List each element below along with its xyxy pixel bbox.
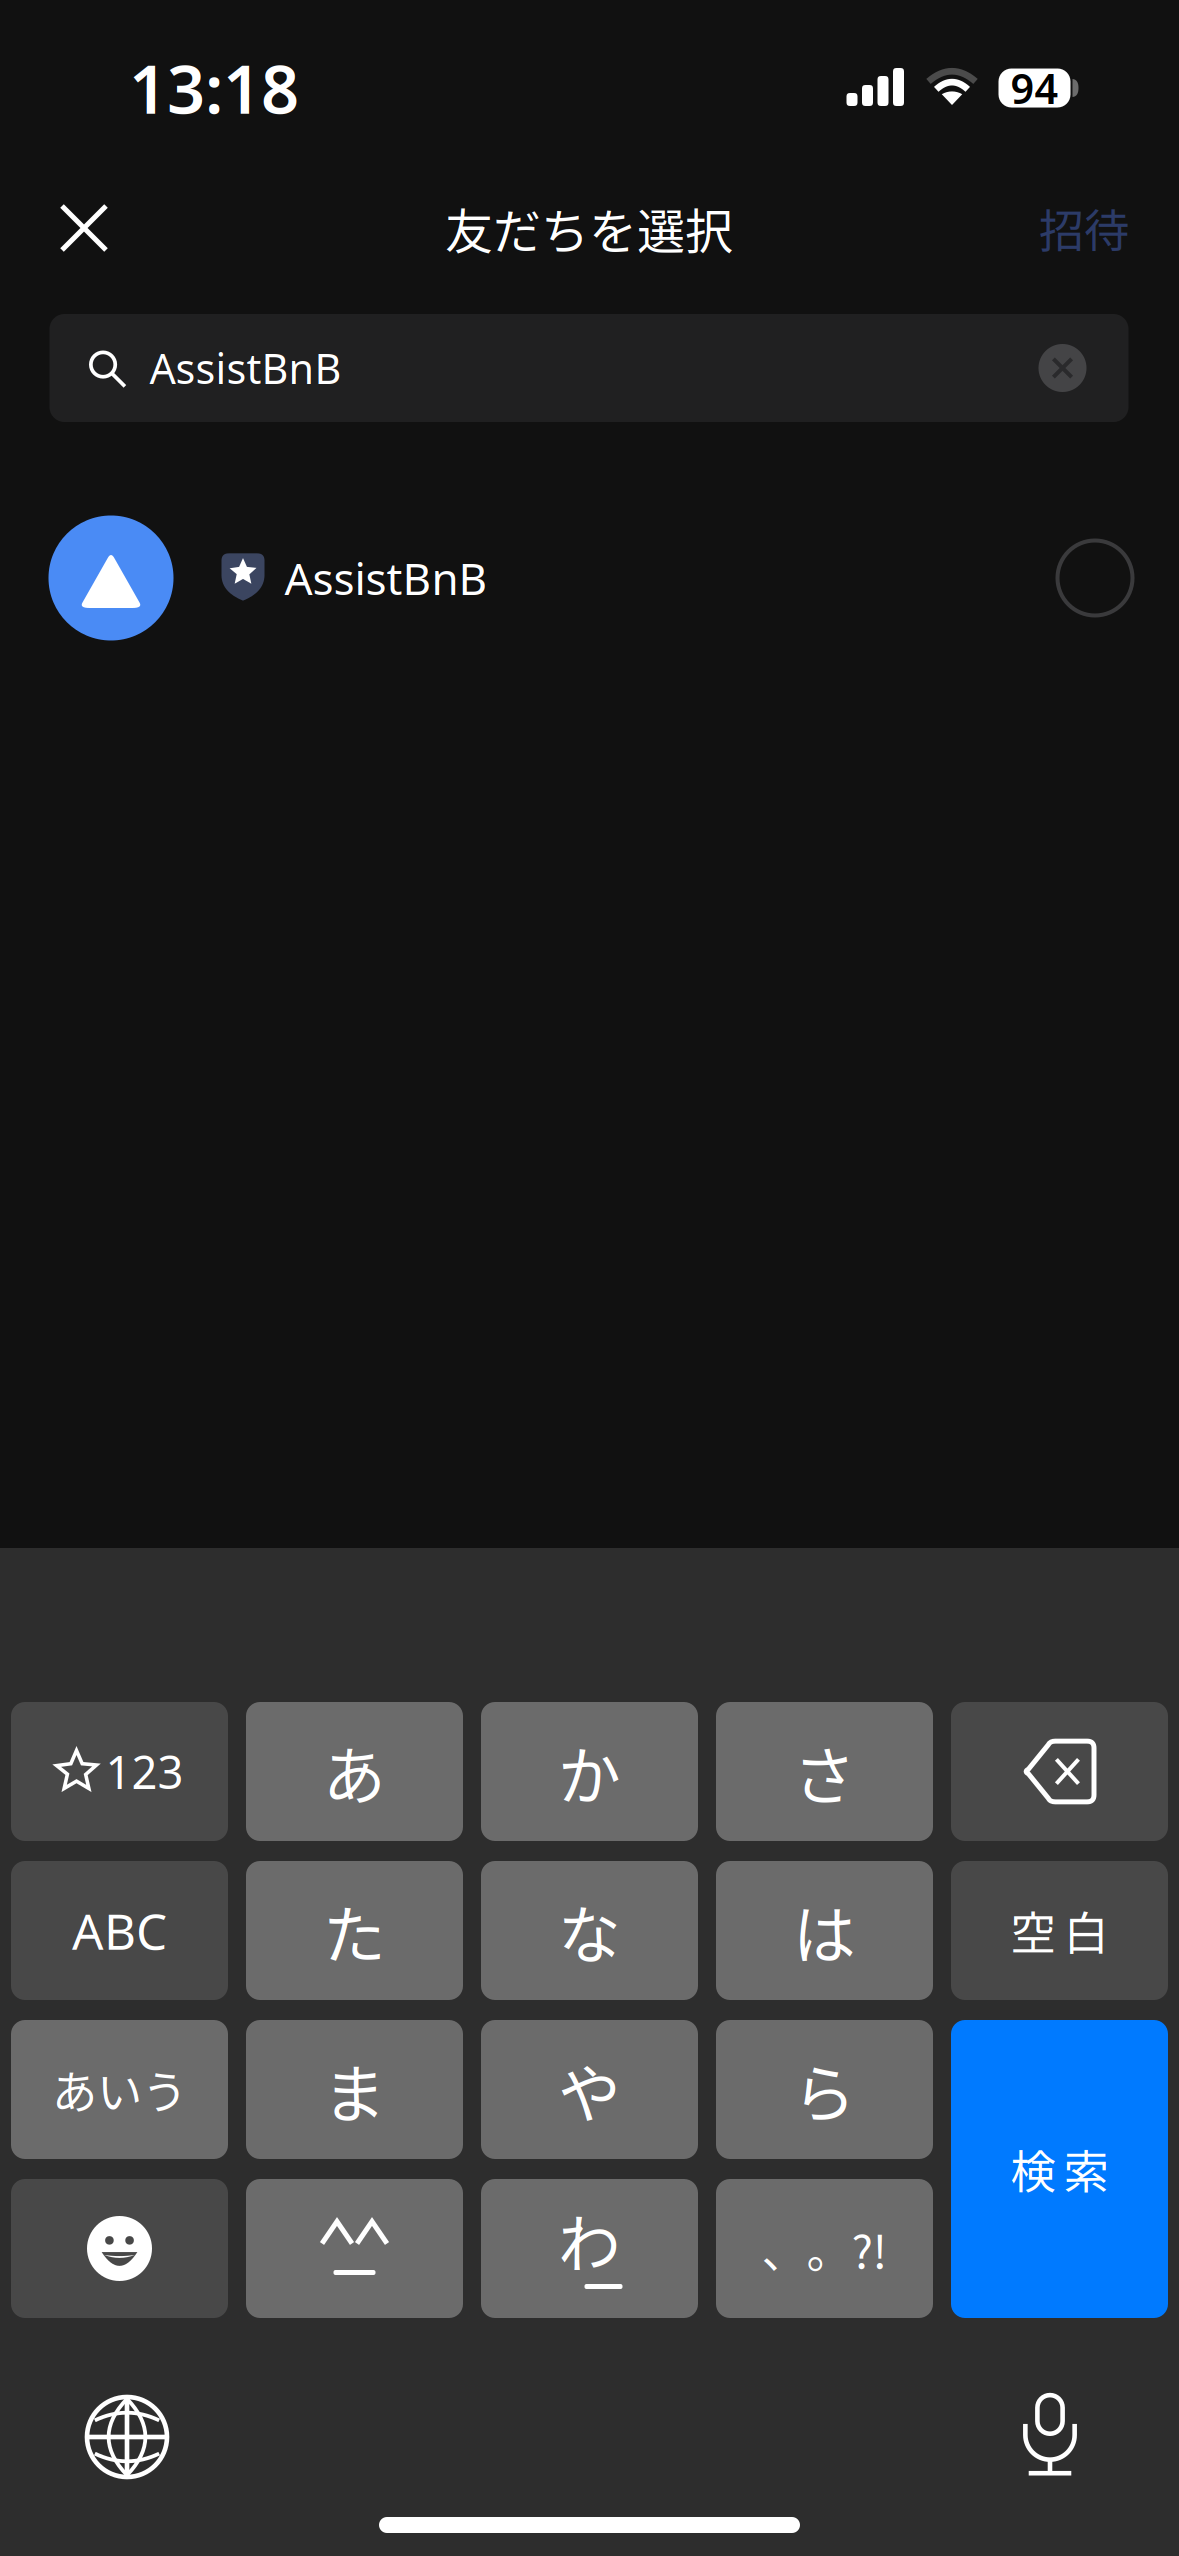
staticText: さ [793,1726,856,1817]
staticText: 123 [105,1741,183,1802]
button[interactable]: 閉じる [24,173,144,283]
staticText: AssistBnB [149,341,341,395]
staticText: 検索 [1010,2136,1108,2202]
button[interactable]: 空白 [951,1861,1168,2000]
button[interactable]: 入力をクリア [1022,328,1102,408]
button[interactable]: あ [246,1702,463,1841]
button[interactable]: 、。?! [716,2179,933,2318]
button[interactable]: な [481,1861,698,2000]
button[interactable]: 音声入力 [985,2370,1115,2500]
button[interactable]: さ [716,1702,933,1841]
button[interactable]: あいう [11,2020,228,2159]
button[interactable]: は [716,1861,933,2000]
staticText: 、。?! [761,2216,887,2281]
button[interactable]: ABC [11,1861,228,2000]
button[interactable]: 顔文字 [246,2179,463,2318]
button[interactable]: 招待 [1009,178,1159,278]
staticText: か [558,1726,621,1817]
button[interactable]: ま [246,2020,463,2159]
staticText: ま [323,2044,386,2135]
button[interactable]: 123 [11,1702,228,1841]
button[interactable]: 削除 [951,1702,1168,1841]
button[interactable]: AssistBnB [0,493,1179,663]
staticText: ら [793,2044,856,2135]
staticText: AssistBnB [284,549,487,607]
staticText: あ [323,1726,386,1817]
staticText: わ [558,2194,621,2285]
button[interactable]: 検索 [951,2020,1168,2318]
staticText: 招待 [1039,195,1129,261]
staticText: 空白 [1010,1898,1108,1963]
staticText: 友だちを選択 [445,193,733,263]
button[interactable]: や [481,2020,698,2159]
button[interactable]: わ [481,2179,698,2318]
staticText: た [323,1885,386,1976]
button[interactable]: 言語を切り替える [62,2372,192,2502]
staticText: な [558,1885,621,1976]
staticText: あいう [52,2057,187,2122]
staticText: 94 [1010,61,1058,115]
button[interactable]: か [481,1702,698,1841]
staticText: は [793,1885,856,1976]
button[interactable]: た [246,1861,463,2000]
staticText: 13:18 [129,44,299,132]
button[interactable]: 絵文字 [11,2179,228,2318]
staticText: や [558,2044,621,2135]
button[interactable]: ら [716,2020,933,2159]
staticText: ABC [72,1898,167,1963]
